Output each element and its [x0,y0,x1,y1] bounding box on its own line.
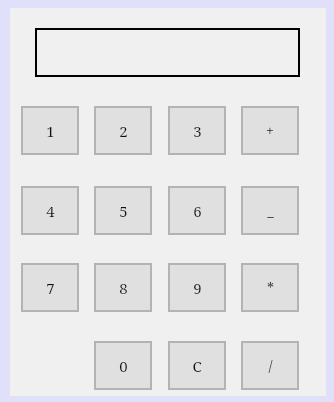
button[interactable]: Display [35,28,300,77]
button[interactable]: 6 [168,186,226,235]
staticText: 8 [119,278,128,298]
button[interactable]: 1 [21,106,79,155]
button[interactable]: 2 [94,106,152,155]
staticText: 1 [46,121,55,141]
staticText: 0 [119,356,128,376]
button[interactable]: 9 [168,263,226,312]
staticText: C [192,356,202,376]
button[interactable]: 0 [94,341,152,390]
staticText: 2 [119,121,128,141]
staticText: * [267,278,274,297]
staticText: 9 [193,278,202,298]
button[interactable]: 8 [94,263,152,312]
staticText: 5 [119,201,128,221]
staticText: 7 [46,278,55,298]
button[interactable]: C [168,341,226,390]
staticText: 3 [193,121,202,141]
staticText: _ [267,201,274,220]
button[interactable]: 7 [21,263,79,312]
button[interactable]: 5 [94,186,152,235]
staticText: 6 [193,201,202,221]
button[interactable]: + [241,106,299,155]
button[interactable]: * [241,263,299,312]
staticText: + [266,121,274,140]
button[interactable]: _ [241,186,299,235]
staticText: / [268,356,273,375]
button[interactable]: / [241,341,299,390]
staticText: 4 [46,201,55,221]
button[interactable]: 3 [168,106,226,155]
button[interactable]: 4 [21,186,79,235]
